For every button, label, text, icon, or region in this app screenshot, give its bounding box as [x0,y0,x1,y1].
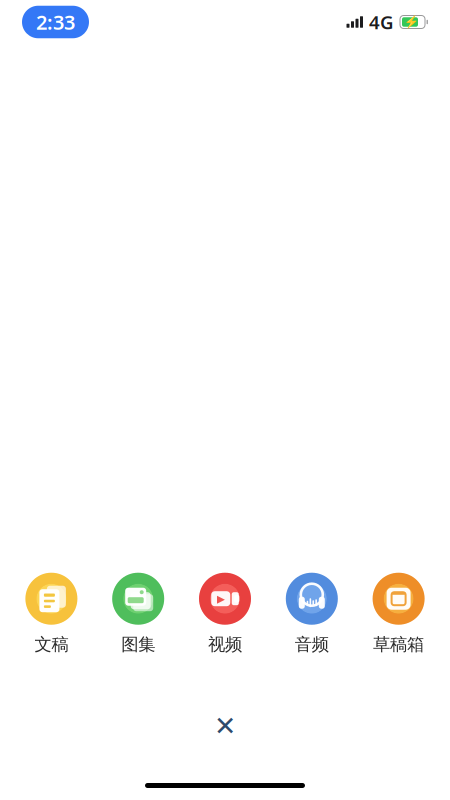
staticText: 2:33 [36,9,75,35]
staticText: ⚡ [404,15,419,29]
staticText: 音频 [295,634,329,655]
button[interactable]: 音频 [268,569,355,659]
staticText: 文稿 [34,634,68,655]
button[interactable]: 文稿 [8,569,95,659]
button[interactable]: 关闭 [202,703,248,749]
staticText: ▶ [217,593,225,605]
button[interactable]: 图集 [95,569,182,659]
button[interactable]: 草稿箱 [355,569,442,659]
staticText: 图集 [121,634,155,655]
staticText: 4G [369,10,394,34]
staticText: ✕ [214,711,236,741]
button[interactable]: ▶ [182,569,268,659]
staticText: 草稿箱 [373,634,424,655]
staticText: 视频 [208,634,242,655]
